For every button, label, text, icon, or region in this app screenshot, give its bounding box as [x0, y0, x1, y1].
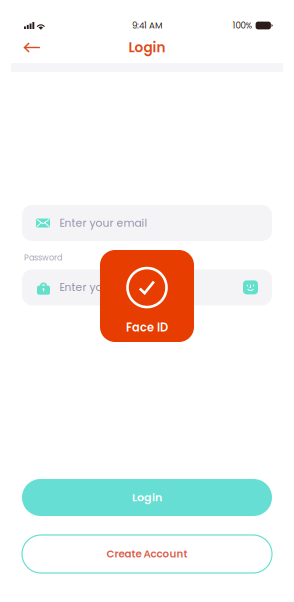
staticText: 9:41 AM: [132, 19, 162, 31]
button[interactable]: Back: [17, 37, 47, 57]
button[interactable]: Create Account: [22, 535, 272, 573]
button[interactable]: Login: [22, 479, 272, 516]
staticText: Login: [128, 38, 165, 57]
staticText: 100%: [233, 19, 253, 31]
staticText: Enter your email: [59, 215, 147, 230]
staticText: Password: [24, 252, 62, 263]
button[interactable]: Enter your password: [22, 269, 272, 305]
button[interactable]: Face ID: [100, 250, 194, 342]
button[interactable]: Enter your email: [22, 205, 272, 241]
staticText: Login: [132, 490, 162, 505]
staticText: Enter your password: [59, 280, 169, 295]
staticText: Create Account: [106, 547, 187, 561]
staticText: Face ID: [126, 320, 168, 335]
